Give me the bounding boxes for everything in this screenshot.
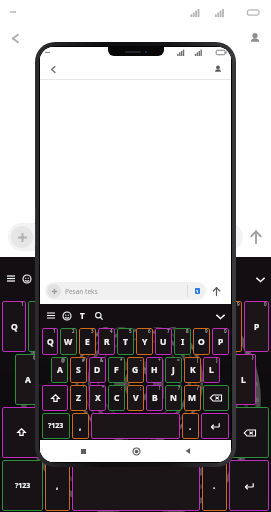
button[interactable]: , — [72, 413, 89, 439]
staticText: & — [100, 357, 104, 363]
button[interactable]: D — [69, 354, 94, 405]
button[interactable]: Text style — [76, 309, 89, 322]
button[interactable]: Enter — [229, 460, 269, 511]
button[interactable]: B — [150, 407, 175, 458]
button[interactable]: G — [123, 354, 148, 405]
staticText: M — [212, 427, 221, 439]
button[interactable]: L — [231, 354, 256, 405]
button[interactable]: R — [82, 301, 107, 352]
button[interactable]: R — [98, 328, 115, 355]
button[interactable]: P — [244, 301, 269, 352]
button[interactable]: O — [193, 328, 210, 355]
staticText: P — [218, 336, 224, 348]
button[interactable]: V — [127, 385, 144, 411]
button[interactable]: A — [15, 354, 40, 405]
button[interactable]: H — [146, 357, 163, 383]
button[interactable]: P — [212, 328, 229, 355]
button[interactable]: Search — [52, 272, 65, 285]
button[interactable]: Contact — [211, 62, 225, 76]
button[interactable]: Emoji — [20, 272, 33, 285]
button[interactable]: Y — [136, 328, 153, 355]
button[interactable]: Add attachment — [45, 282, 206, 300]
button[interactable]: Text style — [36, 272, 49, 285]
button[interactable]: T — [117, 328, 134, 355]
button[interactable]: Collapse keyboard — [213, 309, 227, 323]
button[interactable]: I — [190, 301, 215, 352]
button[interactable]: S — [70, 357, 87, 383]
staticText: @ — [33, 354, 38, 360]
button[interactable]: Send — [206, 281, 226, 301]
staticText: ?123 — [48, 421, 64, 431]
button[interactable]: E — [55, 301, 80, 352]
button[interactable]: X — [69, 407, 94, 458]
button[interactable]: U — [163, 301, 188, 352]
button[interactable]: J — [177, 354, 202, 405]
button[interactable]: . — [202, 460, 227, 511]
button[interactable]: Back — [46, 62, 60, 76]
staticText: + — [158, 357, 161, 363]
button[interactable]: H — [150, 354, 175, 405]
button[interactable]: Recent apps — [73, 441, 93, 461]
button[interactable]: Shift — [42, 385, 68, 411]
button[interactable]: Z — [70, 385, 87, 411]
button[interactable]: . — [182, 413, 199, 439]
staticText: 3 — [75, 301, 78, 307]
button[interactable]: W — [60, 328, 77, 355]
button[interactable]: SIM — [188, 282, 206, 300]
button[interactable]: T — [109, 301, 134, 352]
button[interactable]: K — [184, 357, 201, 383]
button[interactable]: Menu — [44, 309, 57, 322]
button[interactable]: W — [28, 301, 53, 352]
button[interactable]: C — [96, 407, 121, 458]
button[interactable]: B — [146, 385, 163, 411]
button[interactable]: A — [51, 357, 68, 383]
button[interactable]: Q — [2, 301, 26, 352]
button[interactable]: S — [42, 354, 67, 405]
staticText: V — [133, 392, 139, 404]
button[interactable]: ?123 — [2, 460, 43, 511]
button[interactable]: Space — [72, 460, 200, 511]
button[interactable]: M — [184, 385, 201, 411]
staticText: 6 — [156, 301, 159, 307]
button[interactable]: C — [108, 385, 125, 411]
staticText: R — [104, 336, 110, 348]
button[interactable]: Menu — [4, 272, 17, 285]
button[interactable]: Back — [178, 441, 198, 461]
button[interactable]: Emoji — [60, 309, 73, 322]
button[interactable]: Z — [42, 407, 67, 458]
staticText: B — [152, 392, 158, 404]
button[interactable]: Q — [42, 328, 58, 355]
staticText: ?123 — [15, 481, 31, 491]
button[interactable]: N — [165, 385, 182, 411]
button[interactable]: Y — [136, 301, 161, 352]
button[interactable]: F — [108, 357, 125, 383]
button[interactable]: V — [123, 407, 148, 458]
button[interactable]: N — [177, 407, 202, 458]
button[interactable]: O — [217, 301, 242, 352]
button[interactable]: U — [155, 328, 172, 355]
button[interactable]: Space — [91, 413, 180, 439]
button[interactable]: Collapse keyboard — [253, 272, 267, 286]
button[interactable]: I — [174, 328, 191, 355]
button[interactable]: G — [127, 357, 144, 383]
staticText: Pesan teks — [65, 287, 98, 296]
staticText: P — [254, 321, 260, 333]
button[interactable]: L — [203, 357, 220, 383]
button[interactable]: E — [79, 328, 96, 355]
staticText: ; — [140, 385, 142, 391]
button[interactable]: F — [96, 354, 121, 405]
button[interactable]: Search — [92, 309, 105, 322]
button[interactable]: J — [165, 357, 182, 383]
button[interactable]: , — [45, 460, 70, 511]
button[interactable]: Shift — [2, 407, 40, 458]
button[interactable]: Enter — [201, 413, 229, 439]
button[interactable]: X — [89, 385, 106, 411]
button[interactable]: Backspace — [203, 385, 229, 411]
button[interactable]: D — [89, 357, 106, 383]
button[interactable]: M — [204, 407, 229, 458]
button[interactable]: K — [204, 354, 229, 405]
button[interactable]: Backspace — [231, 407, 269, 458]
button[interactable]: Add attachment — [47, 284, 61, 298]
button[interactable]: Home — [126, 441, 146, 461]
button[interactable]: ?123 — [42, 413, 70, 439]
